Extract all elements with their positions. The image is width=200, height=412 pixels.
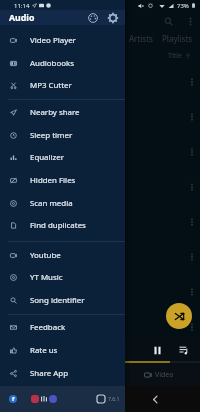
staticText: Track title here	[38, 176, 91, 186]
staticText: Track title here	[38, 316, 91, 326]
staticText: 7.6.1	[108, 396, 120, 403]
staticText: Artist name	[38, 83, 74, 92]
button[interactable]: Facebook	[9, 395, 17, 403]
staticText: 11:14	[14, 2, 30, 10]
staticText: Artist name	[38, 223, 74, 232]
staticText: Youtube	[30, 250, 61, 261]
staticText: Artist name	[38, 328, 74, 337]
button[interactable]: Share App	[0, 362, 125, 384]
button[interactable]: Track title here	[0, 239, 200, 274]
staticText: Title	[168, 51, 182, 61]
button[interactable]: Song identifier	[0, 289, 125, 311]
staticText: Rate us	[30, 345, 58, 356]
button[interactable]: Theme	[85, 10, 100, 25]
button[interactable]: Track title here	[0, 274, 200, 309]
button[interactable]: Playlists	[162, 33, 193, 44]
button[interactable]: Track title here	[0, 204, 200, 239]
staticText: f	[12, 395, 15, 403]
button[interactable]: Track title here	[0, 134, 200, 169]
button[interactable]: Settings	[105, 10, 120, 25]
staticText: 73%	[177, 2, 189, 10]
button[interactable]: Artists	[129, 33, 153, 44]
staticText: Artist name	[38, 293, 74, 302]
button[interactable]: YT Music	[0, 266, 125, 288]
staticText: Track title here	[38, 106, 91, 116]
staticText: Now playing	[8, 340, 49, 350]
staticText: Artist	[8, 351, 24, 359]
button[interactable]: Queue	[174, 340, 194, 360]
staticText: Artist name	[38, 363, 74, 372]
button[interactable]: Nearby share	[0, 101, 125, 123]
button[interactable]: Sleep timer	[0, 124, 125, 146]
staticText: Audio	[9, 12, 35, 24]
button[interactable]: Pause	[147, 340, 167, 360]
button[interactable]: Scan media	[0, 192, 125, 214]
staticText: Song identifier	[30, 295, 85, 306]
button[interactable]: Track title here	[0, 64, 200, 99]
staticText: Find duplicates	[30, 220, 86, 231]
button[interactable]: Track title here	[0, 99, 200, 134]
staticText: Scan media	[30, 198, 73, 209]
button[interactable]: Track title here	[0, 344, 200, 379]
staticText: MP3 Cutter	[30, 80, 72, 91]
button[interactable]: Shuffle	[166, 303, 192, 329]
button[interactable]: Search	[161, 14, 175, 28]
button[interactable]: Rate us	[0, 339, 125, 361]
button[interactable]: Discord	[49, 395, 57, 403]
staticText: Share App	[30, 368, 68, 379]
button[interactable]: Hidden Files	[0, 169, 125, 191]
button[interactable]: Video	[144, 370, 174, 380]
staticText: Nearby share	[30, 107, 80, 118]
button[interactable]: Audiobooks	[0, 52, 125, 74]
staticText: Video	[155, 370, 174, 380]
button[interactable]: Find duplicates	[0, 214, 125, 236]
staticText: Track title here	[38, 246, 91, 256]
button[interactable]: Recents	[94, 392, 108, 406]
button[interactable]: Audio	[30, 370, 61, 380]
button[interactable]: Youtube	[0, 244, 125, 266]
staticText: YT Music	[30, 272, 63, 283]
staticText: Sleep timer	[30, 130, 73, 141]
staticText: Track title here	[38, 351, 91, 361]
button[interactable]: MP3 Cutter	[0, 74, 125, 96]
staticText: Audio	[41, 370, 61, 380]
button[interactable]: Video Player	[0, 29, 125, 51]
staticText: Equalizer	[30, 152, 65, 163]
button[interactable]: Track title here	[0, 169, 200, 204]
staticText: Feedback	[30, 322, 66, 333]
button[interactable]: Track title here	[0, 309, 200, 344]
staticText: Artist name	[38, 153, 74, 162]
staticText: Audiobooks	[30, 58, 74, 69]
button[interactable]: Equalizer	[0, 146, 125, 168]
button[interactable]: Music player	[40, 395, 48, 403]
staticText: Video Player	[30, 35, 76, 46]
staticText: Hidden Files	[30, 175, 76, 186]
button[interactable]: More options	[183, 14, 197, 28]
button[interactable]: Feedback	[0, 316, 125, 338]
button[interactable]: Back	[147, 391, 163, 407]
button[interactable]: Instagram	[31, 395, 39, 403]
